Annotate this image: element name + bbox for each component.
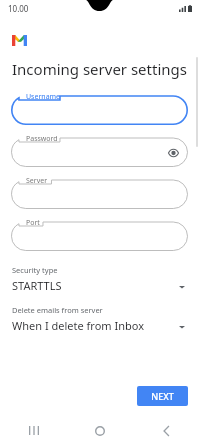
button[interactable]: NEXT [137,386,188,406]
staticText: Password [26,134,58,144]
staticText: STARTTLS [12,278,62,293]
button[interactable]: Password [11,133,188,167]
button[interactable]: Home [67,417,133,444]
staticText: 10.00 [8,3,29,14]
button[interactable]: Server [11,175,188,209]
staticText: Incoming server settings [12,59,187,79]
staticText: Security type [12,265,58,275]
button[interactable]: Delete emails from server [0,305,199,333]
button[interactable]: Recent apps [0,417,67,444]
button[interactable]: Security type [0,265,199,293]
staticText: Server [26,176,48,186]
staticText: Delete emails from server [12,305,103,315]
button[interactable]: Username [11,91,188,125]
staticText: NEXT [151,390,174,402]
button[interactable]: Show password [166,146,180,160]
button[interactable]: Back [133,417,199,444]
staticText: When I delete from Inbox [12,318,144,333]
button[interactable]: Port [11,217,188,251]
staticText: Username [26,92,61,102]
staticText: Port [26,218,40,228]
